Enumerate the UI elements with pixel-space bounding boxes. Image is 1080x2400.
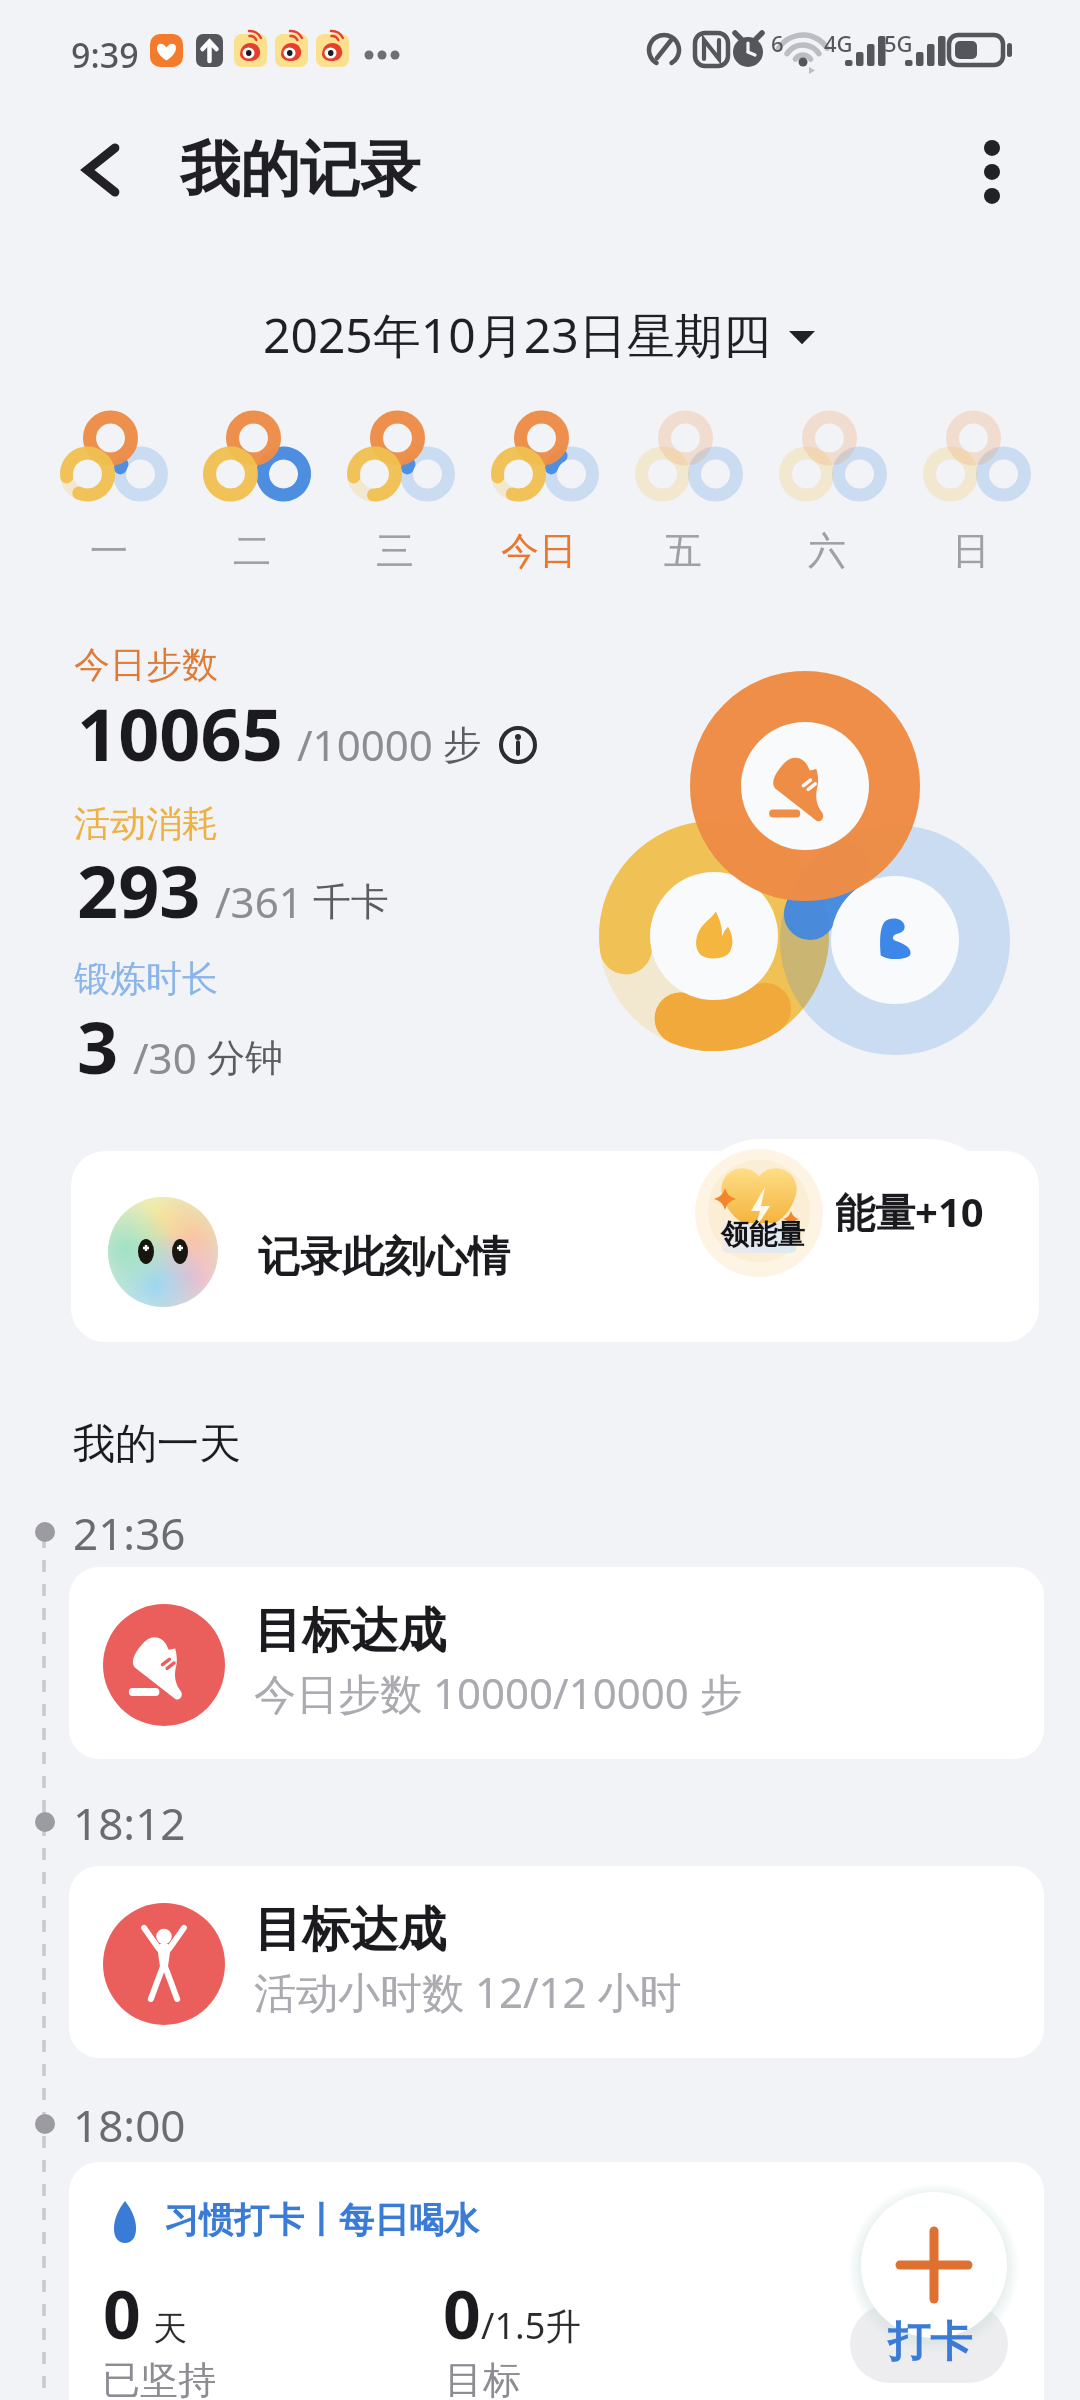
staticText: 9:39 <box>71 32 139 78</box>
staticText: 活动小时数 12/12 小时 <box>254 1963 682 2020</box>
staticText: 18:00 <box>73 2095 186 2155</box>
button[interactable]: 目标达成 <box>69 1866 1044 2058</box>
button[interactable]: 3 <box>77 997 283 1095</box>
staticText: 目标达成 <box>254 1601 446 1661</box>
button[interactable]: 二 <box>180 398 323 575</box>
staticText: 已坚持 <box>102 2356 216 2400</box>
button[interactable]: 锻炼时长 <box>74 956 218 1001</box>
staticText: 293 <box>77 841 201 939</box>
staticText: 21:36 <box>73 1503 186 1563</box>
button[interactable]: 五 <box>611 398 755 575</box>
button[interactable]: 打卡 <box>888 2316 972 2369</box>
staticText: /30 <box>133 1029 197 1086</box>
staticText: 我的记录 <box>180 132 420 208</box>
staticText: 千卡 <box>313 878 389 926</box>
button[interactable]: 目标达成 <box>69 1567 1044 1759</box>
staticText: 18:12 <box>73 1793 186 1853</box>
button[interactable]: 习惯打卡丨每日喝水 <box>69 2162 1044 2400</box>
staticText: 目标达成 <box>254 1900 446 1960</box>
staticText: 天 <box>153 2307 187 2350</box>
staticText: 二 <box>233 527 271 575</box>
staticText: 6 <box>771 28 784 58</box>
staticText: 5G <box>884 28 913 58</box>
staticText: 0 <box>103 2268 141 2358</box>
button[interactable]: Back <box>56 124 148 216</box>
button[interactable]: 293 <box>77 841 389 939</box>
button[interactable]: 10065 <box>77 684 537 782</box>
button[interactable]: 一 <box>37 398 180 575</box>
staticText: 0 <box>443 2268 481 2358</box>
button[interactable]: 活动消耗 <box>74 801 218 846</box>
staticText: 10065 <box>77 684 283 782</box>
staticText: 六 <box>808 527 846 575</box>
staticText: 今日 <box>501 527 577 575</box>
staticText: 目标 <box>445 2356 521 2400</box>
button[interactable]: 六 <box>755 398 899 575</box>
staticText: 日 <box>952 527 990 575</box>
button[interactable] <box>850 2305 1008 2383</box>
staticText: 三 <box>376 527 414 575</box>
button[interactable]: 三 <box>323 398 467 575</box>
button[interactable]: 记录此刻心情 <box>71 1151 1039 1342</box>
button[interactable]: 日 <box>899 398 1043 575</box>
staticText: 步 <box>443 721 481 769</box>
staticText: 3 <box>77 997 119 1095</box>
staticText: 今日步数 10000/10000 步 <box>254 1664 742 1721</box>
staticText: 2025年10月23日星期四 <box>263 302 771 368</box>
staticText: 我的一天 <box>73 1418 241 1471</box>
staticText: 习惯打卡丨每日喝水 <box>164 2198 479 2242</box>
staticText: 五 <box>664 527 702 575</box>
button[interactable]: 今日 <box>467 398 611 575</box>
staticText: /1.5升 <box>481 2301 582 2350</box>
button[interactable]: More options <box>946 124 1038 216</box>
staticText: 分钟 <box>207 1034 283 1082</box>
staticText: 领能量 <box>721 1217 805 1252</box>
staticText: 记录此刻心情 <box>258 1231 510 1284</box>
button[interactable]: Add <box>849 2180 1019 2350</box>
staticText: /10000 <box>297 716 433 773</box>
button[interactable]: 2025年10月23日星期四 <box>0 300 1080 370</box>
staticText: 一 <box>90 527 128 575</box>
staticText: /361 <box>215 873 303 930</box>
button[interactable]: 今日步数 <box>74 642 218 687</box>
button[interactable]: 领能量 <box>691 1139 998 1279</box>
staticText: 4G <box>824 28 853 58</box>
staticText: 能量+10 <box>835 1184 984 1239</box>
